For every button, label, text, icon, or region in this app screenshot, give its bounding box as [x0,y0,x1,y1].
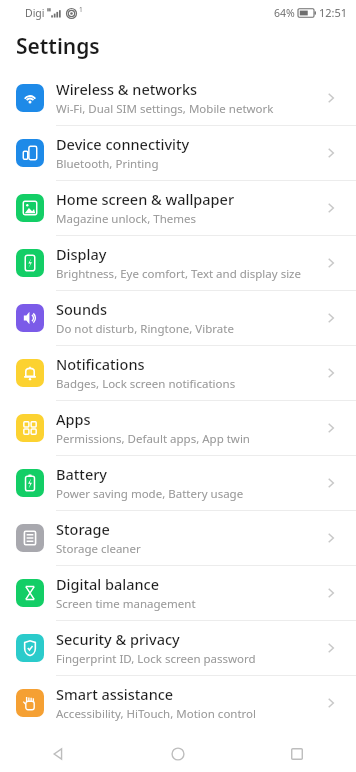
staticText: Bluetooth, Printing [56,156,159,172]
staticText: Apps [56,409,91,429]
staticText: Notifications [56,354,145,374]
button[interactable]: Apps [0,400,356,455]
button[interactable]: Storage [0,510,356,565]
button[interactable]: Device connectivity [0,125,356,180]
staticText: Wireless & networks [56,79,198,99]
staticText: Smart assistance [56,684,174,704]
staticText: Device connectivity [56,134,190,154]
button[interactable]: Security & privacy [0,620,356,675]
staticText: Permissions, Default apps, App twin [56,431,250,447]
staticText: Storage [56,519,110,539]
button[interactable]: Digital balance [0,565,356,620]
staticText: Do not disturb, Ringtone, Vibrate [56,321,234,337]
button[interactable]: Home [118,735,237,772]
staticText: 12:51 [319,5,348,20]
staticText: Storage cleaner [56,541,141,557]
staticText: Fingerprint ID, Lock screen password [56,651,256,667]
button[interactable]: Wireless & networks [0,70,356,125]
button[interactable]: Sounds [0,290,356,345]
staticText: Settings [16,32,100,61]
staticText: 64% [274,6,295,20]
staticText: Power saving mode, Battery usage [56,486,244,502]
button[interactable]: Back [0,735,118,772]
staticText: Digi [25,6,45,20]
staticText: Magazine unlock, Themes [56,211,196,227]
button[interactable]: Battery [0,455,356,510]
staticText: Security & privacy [56,629,180,649]
staticText: Wi-Fi, Dual SIM settings, Mobile network [56,101,274,117]
button[interactable]: Display [0,235,356,290]
staticText: Badges, Lock screen notifications [56,376,236,392]
staticText: Home screen & wallpaper [56,189,235,209]
staticText: Sounds [56,299,108,319]
staticText: Digital balance [56,574,159,594]
staticText: Battery [56,464,107,484]
staticText: 1 [79,5,83,14]
button[interactable]: Home screen & wallpaper [0,180,356,235]
button[interactable]: Recent apps [237,735,356,772]
staticText: Brightness, Eye comfort, Text and displa… [56,266,302,282]
button[interactable]: Notifications [0,345,356,400]
staticText: Accessibility, HiTouch, Motion control [56,706,257,722]
button[interactable]: Smart assistance [0,675,356,730]
staticText: Display [56,244,107,264]
staticText: Screen time management [56,596,196,612]
